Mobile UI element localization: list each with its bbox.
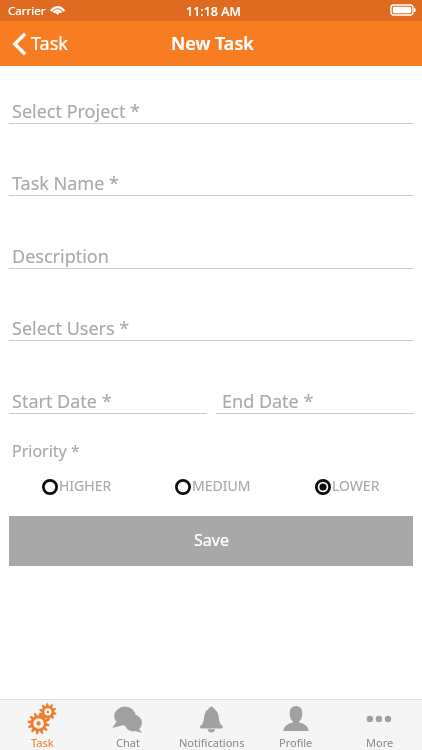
staticText: Task [31, 735, 54, 750]
button[interactable]: Save [9, 516, 413, 566]
button[interactable]: Select Users * [9, 310, 414, 341]
staticText: HIGHER [59, 476, 112, 495]
button[interactable]: Task [0, 700, 85, 750]
button[interactable]: End Date * [216, 383, 414, 414]
staticText: New Task [171, 31, 254, 56]
staticText: 11:18 AM [186, 3, 241, 20]
staticText: Save [194, 529, 229, 551]
staticText: Description [12, 244, 109, 269]
button[interactable]: Task Name * [9, 165, 414, 196]
staticText: End Date * [222, 389, 314, 414]
button[interactable]: Description [9, 238, 414, 269]
button[interactable]: Select Project * [9, 93, 414, 124]
button[interactable]: Chat [85, 700, 170, 750]
staticText: Task Name * [12, 171, 119, 196]
staticText: Select Project * [12, 99, 141, 124]
staticText: Chat [116, 735, 140, 750]
staticText: Start Date * [12, 389, 112, 414]
staticText: More [366, 735, 394, 750]
staticText: Priority * [12, 440, 80, 462]
staticText: MEDIUM [192, 476, 251, 495]
staticText: Notifications [179, 735, 245, 750]
button[interactable]: Start Date * [9, 383, 207, 414]
button[interactable]: Profile [254, 700, 338, 750]
staticText: Select Users * [12, 316, 130, 341]
button[interactable]: Task [8, 21, 74, 66]
button[interactable]: MEDIUM [169, 472, 261, 502]
button[interactable]: Notifications [170, 700, 254, 750]
button[interactable]: HIGHER [36, 472, 128, 502]
staticText: LOWER [332, 476, 380, 495]
staticText: Carrier [8, 3, 46, 19]
staticText: Task [31, 31, 68, 56]
staticText: Profile [279, 735, 313, 750]
button[interactable]: LOWER [309, 472, 401, 502]
button[interactable]: More [338, 700, 422, 750]
